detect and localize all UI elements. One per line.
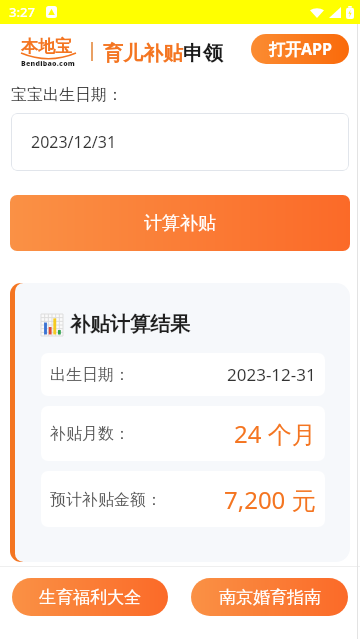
button[interactable]: 出生日期： xyxy=(41,353,325,396)
staticText: 3:27 xyxy=(9,3,35,21)
button[interactable]: 南京婚育指南 xyxy=(191,578,348,616)
staticText: 本地宝 xyxy=(21,36,72,57)
button[interactable]: 打开APP xyxy=(251,34,349,64)
staticText: 南京婚育指南 xyxy=(219,587,321,608)
staticText: 24 个月 xyxy=(234,417,316,450)
staticText: 申领 xyxy=(183,41,223,66)
staticText: 宝宝出生日期： xyxy=(11,85,123,105)
staticText: Bendibao.com xyxy=(21,59,76,69)
staticText: 7,200 元 xyxy=(224,483,316,516)
staticText: 2023/12/31 xyxy=(31,131,117,153)
button[interactable]: 生育福利大全 xyxy=(12,578,168,616)
staticText: 计算补贴 xyxy=(144,212,216,235)
staticText: 补贴计算结果 xyxy=(70,312,190,337)
staticText: 生育福利大全 xyxy=(39,587,141,608)
staticText: 出生日期： xyxy=(50,365,130,385)
staticText: 预计补贴金额： xyxy=(50,490,162,510)
button[interactable]: 补贴月数： xyxy=(41,406,325,461)
button[interactable]: 预计补贴金额： xyxy=(41,471,325,527)
button[interactable]: 计算补贴 xyxy=(10,195,350,251)
staticText: 补贴月数： xyxy=(50,424,130,444)
staticText: 育儿补贴 xyxy=(103,41,183,66)
staticText: 打开APP xyxy=(269,38,332,60)
button[interactable]: 2023/12/31 xyxy=(11,113,349,171)
staticText: 2023-12-31 xyxy=(227,363,316,386)
